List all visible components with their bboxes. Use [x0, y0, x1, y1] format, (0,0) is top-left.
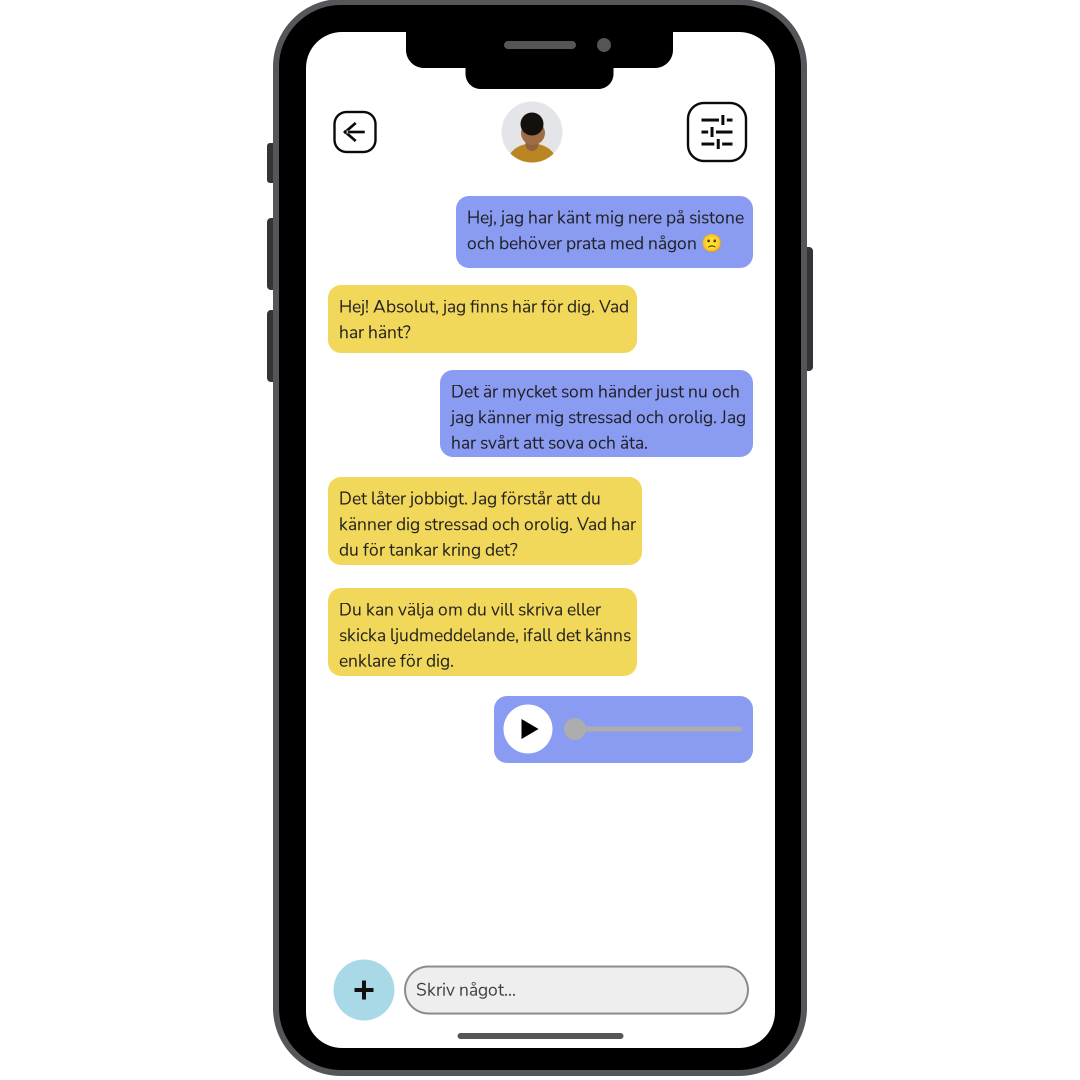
button[interactable]: Back	[306, 32, 775, 1048]
staticText: Det är mycket som händer just nu och jag…	[451, 380, 746, 455]
staticText: Hej, jag har känt mig nere på sistone oc…	[467, 206, 744, 255]
button[interactable]: Open contact profile	[306, 32, 775, 1048]
button[interactable]: Conversation settings	[306, 32, 775, 1048]
button[interactable]: Add attachment	[306, 32, 775, 1048]
staticText: Du kan välja om du vill skriva eller ski…	[339, 598, 631, 673]
button[interactable]: Play voice message	[306, 32, 775, 1048]
staticText: Skriv något...	[416, 978, 516, 1002]
button[interactable]: Message field	[306, 32, 775, 1048]
staticText: Hej! Absolut, jag finns här för dig. Vad…	[339, 295, 629, 344]
staticText: Det låter jobbigt. Jag förstår att du kä…	[339, 487, 636, 562]
